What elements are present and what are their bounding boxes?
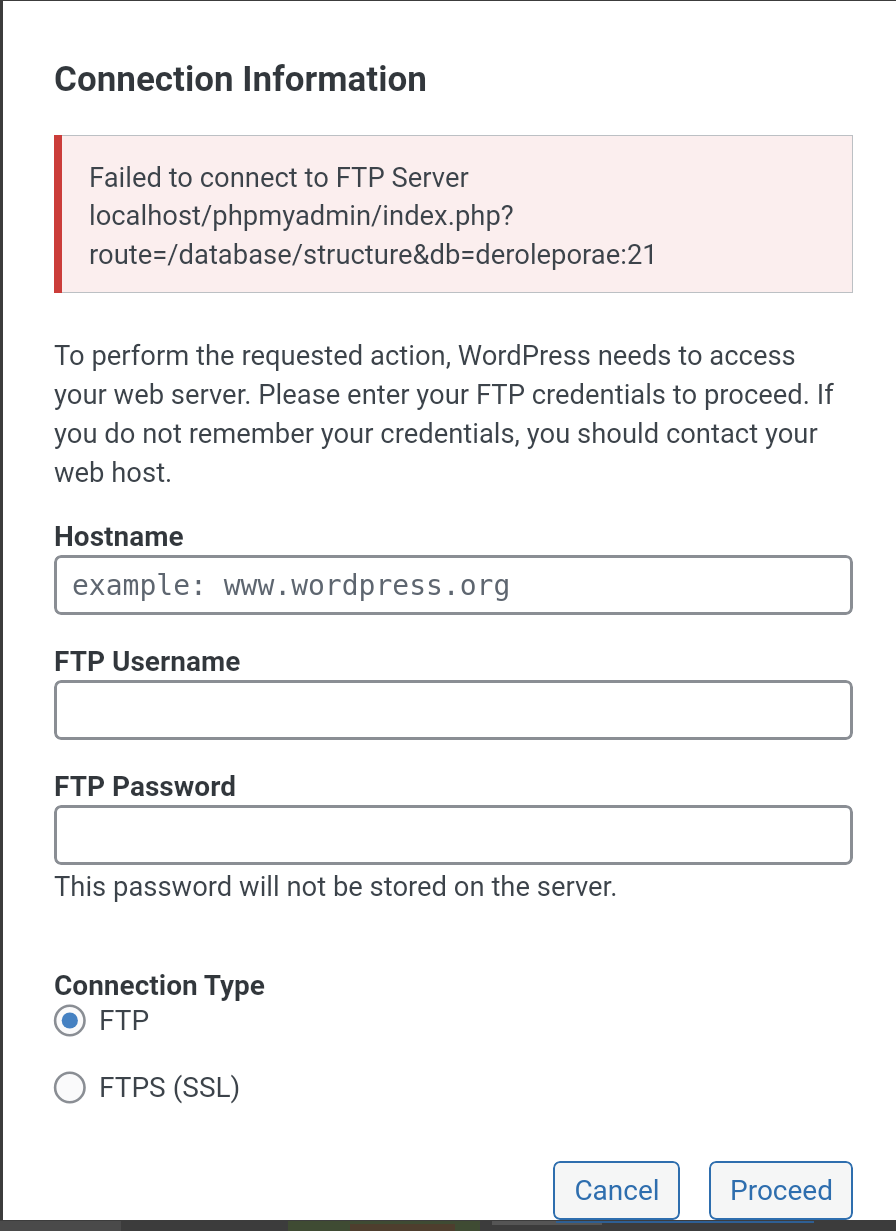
- staticText: FTPS (SSL): [99, 1071, 241, 1104]
- button[interactable]: Cancel: [553, 1161, 680, 1220]
- button[interactable]: Text input: [54, 680, 853, 740]
- staticText: FTP Username: [54, 645, 241, 678]
- staticText: To perform the requested action, WordPre…: [54, 340, 834, 488]
- staticText: Failed to connect to FTP Server localhos…: [89, 162, 658, 271]
- staticText: example: www.wordpress.org: [72, 569, 511, 602]
- staticText: Connection Information: [54, 59, 427, 100]
- button[interactable]: FTPS (SSL): [54, 1070, 853, 1104]
- staticText: Proceed: [730, 1174, 833, 1207]
- button[interactable]: Text input: [54, 805, 853, 865]
- staticText: Hostname: [54, 520, 184, 553]
- button[interactable]: FTP: [54, 1003, 853, 1037]
- staticText: FTP: [99, 1004, 150, 1037]
- staticText: Connection Type: [54, 969, 265, 1002]
- staticText: FTP Password: [54, 770, 236, 803]
- staticText: Cancel: [574, 1174, 660, 1207]
- button[interactable]: Proceed: [709, 1161, 853, 1220]
- button[interactable]: example: www.wordpress.org: [54, 555, 853, 615]
- staticText: This password will not be stored on the …: [54, 871, 618, 903]
